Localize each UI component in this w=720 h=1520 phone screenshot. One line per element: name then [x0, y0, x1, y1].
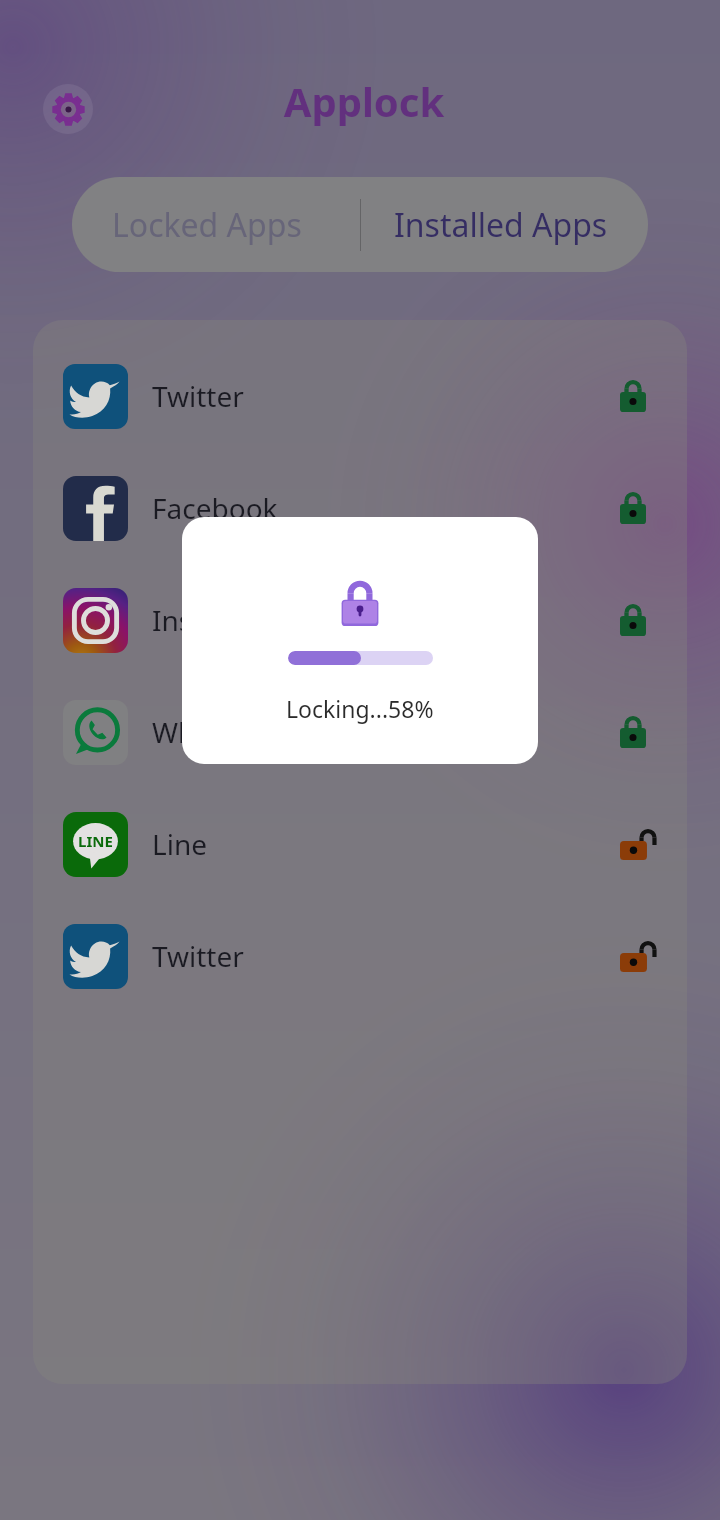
button[interactable]: Locking...58% — [182, 517, 538, 764]
staticText: Installed Apps — [394, 203, 608, 247]
button[interactable]: Instagram — [33, 564, 687, 676]
staticText: Facebook — [152, 489, 278, 527]
button[interactable]: Twitter — [33, 340, 687, 452]
staticText: LINE — [78, 831, 113, 851]
staticText: Line — [152, 825, 207, 863]
staticText: Locked Apps — [112, 203, 302, 247]
button[interactable]: WhatsApp — [33, 676, 687, 788]
other: Locked — [620, 716, 646, 748]
button[interactable]: Locked Apps — [72, 177, 360, 272]
staticText: Applock — [4, 74, 720, 128]
staticText: WhatsApp — [152, 713, 287, 751]
button[interactable]: LINE — [33, 788, 687, 900]
staticText: Twitter — [152, 377, 244, 415]
other: Unlocked — [620, 829, 655, 860]
staticText: Locking...58% — [286, 693, 434, 724]
staticText: Instagram — [152, 601, 289, 639]
other: Unlocked — [620, 941, 655, 972]
button[interactable]: Facebook — [33, 452, 687, 564]
button[interactable]: Twitter — [33, 900, 687, 1012]
staticText: Twitter — [152, 937, 244, 975]
button[interactable]: Installed Apps — [360, 177, 648, 272]
other: Locked — [620, 604, 646, 636]
other: Locked — [620, 492, 646, 524]
other: Locked — [620, 380, 646, 412]
button[interactable]: Settings — [43, 84, 93, 134]
